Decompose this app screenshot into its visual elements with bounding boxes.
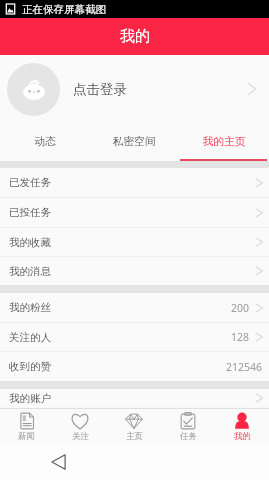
staticText: 收到的赞 <box>9 360 51 373</box>
staticText: 200 <box>231 301 250 315</box>
staticText: 新闻 <box>18 431 35 442</box>
staticText: 我的消息 <box>9 265 51 278</box>
staticText: 我的主页 <box>202 135 246 149</box>
staticText: 点击登录 <box>73 81 127 98</box>
button[interactable]: 已发任务 <box>0 168 269 197</box>
staticText: 关注 <box>72 431 89 442</box>
button[interactable]: 主页 <box>107 409 161 444</box>
staticText: 212546 <box>226 360 263 374</box>
button[interactable]: 任务 <box>161 409 215 444</box>
button[interactable]: 点击登录 <box>0 55 269 123</box>
staticText: 私密空间 <box>112 135 156 149</box>
button[interactable]: 我的收藏 <box>0 228 269 256</box>
staticText: 动态 <box>34 135 56 149</box>
staticText: 我的账户 <box>9 392 51 405</box>
staticText: 我的收藏 <box>9 236 51 249</box>
button[interactable]: 已投任务 <box>0 198 269 227</box>
staticText: 我的 <box>234 431 251 442</box>
staticText: 主页 <box>126 431 143 442</box>
staticText: 关注的人 <box>9 331 51 344</box>
button[interactable]: Back <box>41 445 75 479</box>
button[interactable]: 关注 <box>53 409 107 444</box>
staticText: 已发任务 <box>9 176 51 189</box>
staticText: 128 <box>231 330 250 344</box>
button[interactable]: 私密空间 <box>89 123 179 161</box>
button[interactable]: 动态 <box>0 123 89 161</box>
staticText: 已投任务 <box>9 206 51 219</box>
button[interactable]: 新闻 <box>0 409 53 444</box>
button[interactable]: 关注的人 <box>0 323 269 351</box>
button[interactable]: 我的账户 <box>0 389 269 407</box>
staticText: 正在保存屏幕截图 <box>22 3 106 16</box>
button[interactable]: 我的主页 <box>179 123 269 161</box>
staticText: 任务 <box>180 431 197 442</box>
button[interactable]: 我的粉丝 <box>0 293 269 322</box>
staticText: 我的 <box>120 27 150 46</box>
button[interactable]: 收到的赞 <box>0 352 269 381</box>
staticText: 我的粉丝 <box>9 301 51 314</box>
button[interactable]: 我的 <box>215 409 269 444</box>
button[interactable]: 我的消息 <box>0 257 269 285</box>
